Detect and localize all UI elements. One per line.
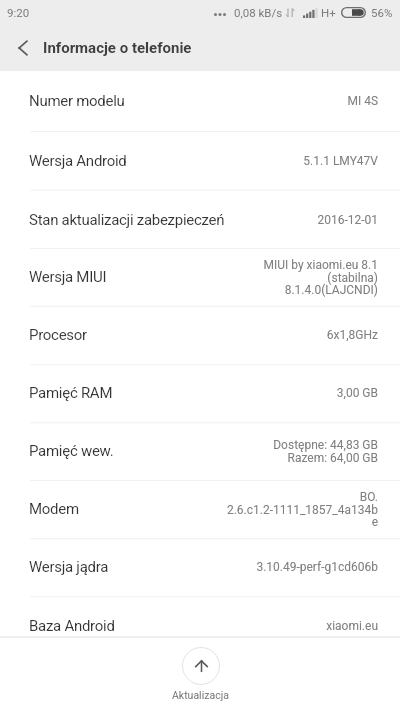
button[interactable]: Wersja MIUI — [0, 248, 400, 306]
button[interactable]: Stan aktualizacji zabezpieczeń — [0, 190, 400, 249]
staticText: Dostępne: 44,83 GB Razem: 64,00 GB — [120, 438, 378, 464]
staticText: 6x1,8GHz — [93, 328, 378, 342]
button[interactable]: Back — [0, 24, 44, 71]
button[interactable]: Wersja jądra — [0, 538, 400, 596]
staticText: 56% — [371, 6, 393, 19]
staticText: Wersja Android — [29, 152, 127, 170]
staticText: Aktualizacja — [172, 689, 229, 701]
staticText: 5.1.1 LMY47V — [133, 154, 378, 168]
staticText: Wersja jądra — [29, 558, 109, 576]
staticText: 0,08 kB/s — [234, 6, 283, 19]
button[interactable]: Modem — [0, 480, 400, 538]
staticText: Pamięć RAM — [29, 384, 113, 402]
button[interactable]: Pamięć wew. — [0, 422, 400, 480]
staticText: Pamięć wew. — [29, 442, 114, 460]
staticText: MI 4S — [131, 94, 378, 108]
button[interactable]: Wersja Android — [0, 131, 400, 190]
staticText: Procesor — [29, 326, 87, 344]
staticText: xiaomi.eu — [121, 619, 378, 633]
staticText: MIUI by xiaomi.eu 8.1 (stabilna) 8.1.4.0… — [113, 258, 378, 296]
staticText: Stan aktualizacji zabezpieczeń — [29, 211, 225, 229]
button[interactable]: Procesor — [0, 306, 400, 364]
staticText: Wersja MIUI — [29, 268, 107, 286]
staticText: 3,00 GB — [119, 386, 378, 400]
staticText: Modem — [29, 500, 79, 518]
staticText: H+ — [321, 6, 336, 19]
button[interactable]: Numer modelu — [0, 71, 400, 131]
button[interactable]: Baza Android — [0, 596, 400, 636]
staticText: Numer modelu — [29, 92, 125, 110]
staticText: 2016-12-01 — [231, 213, 378, 227]
staticText: Informacje o telefonie — [43, 39, 192, 57]
staticText: Baza Android — [29, 617, 115, 635]
button[interactable]: Pamięć RAM — [0, 364, 400, 422]
staticText: 3.10.49-perf-g1cd606b — [115, 560, 378, 574]
button[interactable]: Aktualizacja — [162, 638, 239, 705]
staticText: 9:20 — [7, 6, 30, 19]
staticText: BO. 2.6.c1.2-1111_1857_4a134b e — [85, 490, 378, 528]
